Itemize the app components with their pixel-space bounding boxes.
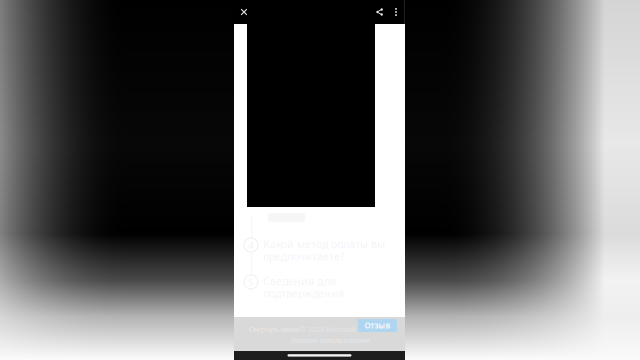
staticText: 4 (248, 239, 253, 251)
button[interactable]: Close (234, 0, 254, 24)
staticText: Сведения для (263, 274, 336, 288)
staticText: 5 (248, 276, 253, 288)
button[interactable]: More options (388, 0, 404, 24)
button[interactable]: Отзыв (358, 319, 397, 332)
staticText: Отзыв (364, 320, 390, 331)
staticText: подтверждения (263, 286, 344, 300)
staticText: предпочитаете? (263, 249, 345, 263)
staticText: Какой метод оплаты вы (263, 237, 385, 251)
staticText: © 2023 Microsoft (300, 325, 355, 334)
staticText: Условия использования (291, 336, 370, 345)
staticText: Свернуть меню (249, 325, 299, 334)
button[interactable]: Share (371, 0, 389, 24)
